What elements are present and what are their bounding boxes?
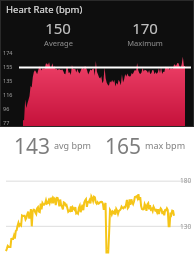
staticText: 96 xyxy=(3,105,10,112)
staticText: 180 xyxy=(180,176,192,185)
staticText: 135 xyxy=(3,77,13,84)
staticText: 143 xyxy=(14,132,51,161)
staticText: 77 xyxy=(3,119,10,126)
staticText: Maximum xyxy=(127,38,163,48)
staticText: 174 xyxy=(3,49,13,56)
staticText: Heart Rate (bpm) xyxy=(6,3,83,16)
button[interactable]: 180 xyxy=(0,173,194,259)
staticText: avg bpm xyxy=(54,139,91,151)
staticText: 170 xyxy=(132,18,158,38)
staticText: Average xyxy=(44,38,73,48)
button[interactable]: Heart Rate (bpm) xyxy=(1,1,193,126)
staticText: 165 xyxy=(105,132,142,161)
staticText: 150 xyxy=(45,18,71,38)
button[interactable]: 143 xyxy=(0,127,194,165)
staticText: max bpm xyxy=(145,139,186,151)
staticText: 130 xyxy=(180,222,192,231)
staticText: 155 xyxy=(3,63,13,70)
staticText: 116 xyxy=(3,91,13,98)
